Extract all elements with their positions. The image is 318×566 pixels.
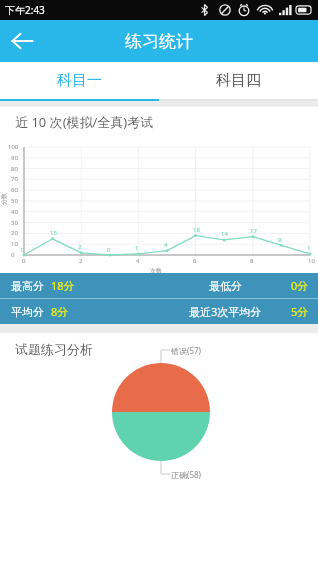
staticText: 4 <box>136 257 140 265</box>
staticText: 正确(58) <box>171 469 201 480</box>
staticText: 80 <box>11 165 18 173</box>
staticText: 分数 <box>0 193 8 205</box>
staticText: 0 <box>11 251 15 259</box>
staticText: 1 <box>135 244 139 252</box>
staticText: 0 <box>107 246 111 254</box>
button[interactable]: 科目四 <box>159 62 318 99</box>
staticText: 90 <box>11 154 18 162</box>
staticText: 18 <box>193 226 200 234</box>
staticText: 18分 <box>51 278 75 293</box>
staticText: 17 <box>250 227 257 235</box>
staticText: 1 <box>307 244 311 252</box>
staticText: 8分 <box>51 304 69 319</box>
staticText: 15 <box>50 229 57 237</box>
staticText: 0分 <box>291 278 309 293</box>
staticText: 2 <box>79 257 83 265</box>
staticText: 近 10 次(模拟/全真)考试 <box>15 113 154 131</box>
staticText: 40 <box>11 208 18 216</box>
staticText: 8 <box>250 257 254 265</box>
staticText: 最低分 <box>209 279 242 293</box>
staticText: 10 <box>11 240 18 248</box>
staticText: 错误(57) <box>171 345 201 356</box>
staticText: 0 <box>22 257 26 265</box>
staticText: 6 <box>193 257 197 265</box>
button[interactable]: Back <box>0 20 44 62</box>
staticText: 50 <box>11 197 18 205</box>
staticText: 10 <box>308 257 315 265</box>
staticText: 最近3次平均分 <box>189 304 262 319</box>
button[interactable]: 平均分 <box>0 299 318 324</box>
staticText: 20 <box>11 229 18 237</box>
staticText: 5分 <box>291 304 309 319</box>
staticText: 下午2:43 <box>5 3 45 17</box>
staticText: 30 <box>11 219 18 227</box>
button[interactable]: 科目一 <box>0 62 159 99</box>
staticText: 科目四 <box>216 71 261 90</box>
staticText: 2 <box>78 243 82 251</box>
staticText: 0 <box>21 246 25 254</box>
staticText: 科目一 <box>57 71 102 90</box>
staticText: 4 <box>164 241 168 249</box>
staticText: 次数 <box>150 267 162 275</box>
staticText: 60 <box>11 186 18 194</box>
staticText: 9 <box>278 236 282 244</box>
staticText: 练习统计 <box>125 31 193 52</box>
staticText: 100 <box>8 143 19 151</box>
staticText: 平均分 <box>11 305 44 319</box>
staticText: 试题练习分析 <box>15 341 93 357</box>
staticText: 70 <box>11 175 18 183</box>
staticText: 14 <box>221 230 228 238</box>
staticText: 最高分 <box>11 279 44 293</box>
button[interactable]: 最高分 <box>0 273 318 298</box>
